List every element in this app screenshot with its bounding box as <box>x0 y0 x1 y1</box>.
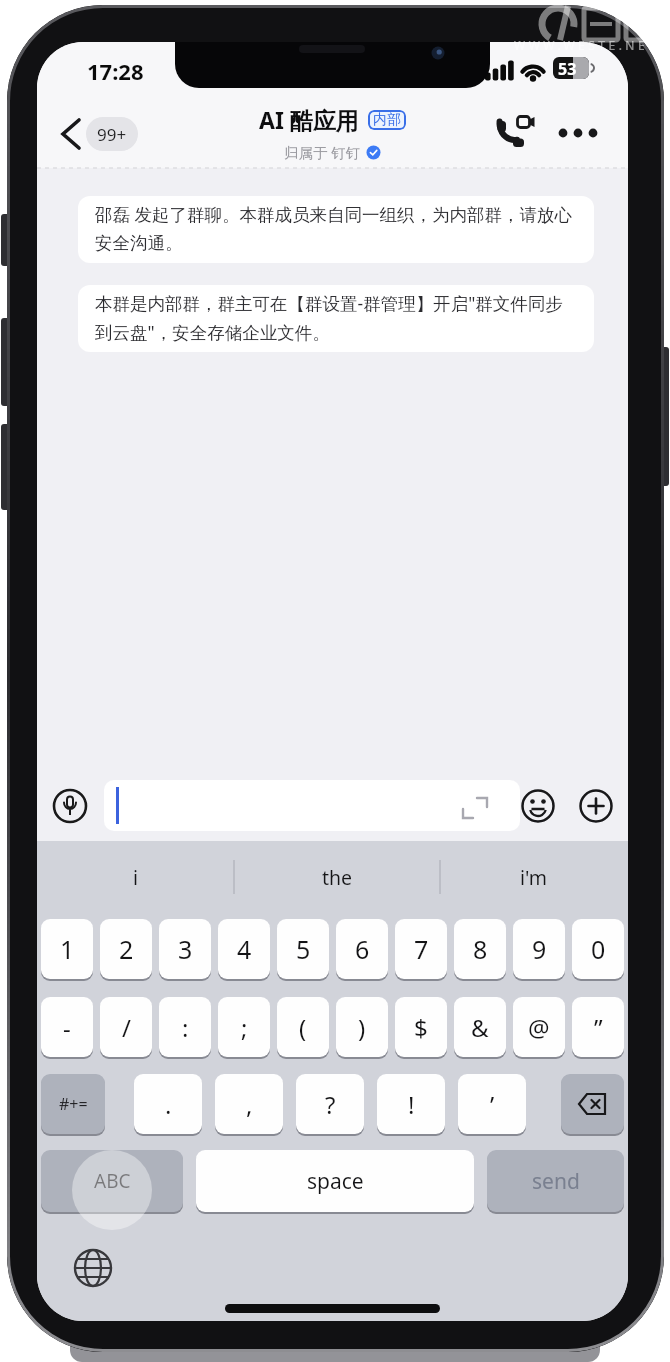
staticText: i'm <box>520 864 548 891</box>
button[interactable] <box>556 126 602 140</box>
button[interactable]: & <box>454 997 506 1057</box>
staticText: ( <box>299 1011 307 1044</box>
button[interactable]: / <box>100 997 152 1057</box>
staticText: 8 <box>473 932 488 966</box>
staticText: 内部 <box>373 111 401 129</box>
staticText: send <box>532 1167 580 1196</box>
button[interactable]: #+= <box>41 1074 105 1134</box>
button[interactable]: ” <box>572 997 624 1057</box>
button[interactable]: 8 <box>454 919 506 979</box>
button[interactable] <box>579 789 613 823</box>
staticText: 53 <box>558 58 577 79</box>
button[interactable] <box>521 789 555 823</box>
staticText: 9 <box>532 932 547 966</box>
button[interactable]: 4 <box>218 919 270 979</box>
staticText: 归属于 钉钉 <box>284 142 361 162</box>
button[interactable]: : <box>159 997 211 1057</box>
staticText: WWW.WESTE.NET <box>514 37 659 53</box>
staticText: space <box>307 1167 364 1196</box>
staticText: 0 <box>591 932 606 966</box>
staticText: - <box>63 1011 71 1044</box>
staticText: #+= <box>59 1093 88 1115</box>
staticText: ABC <box>94 1168 131 1194</box>
staticText: 本群是内部群，群主可在【群设置-群管理】开启"群文件同步 到云盘"，安全存储企业… <box>95 291 563 345</box>
staticText: / <box>122 1011 131 1044</box>
button[interactable]: ) <box>336 997 388 1057</box>
staticText: 3 <box>178 932 193 966</box>
staticText: the <box>322 864 353 891</box>
button[interactable]: 9 <box>513 919 565 979</box>
staticText: 2 <box>119 932 134 966</box>
button[interactable]: 3 <box>159 919 211 979</box>
button[interactable]: 7 <box>395 919 447 979</box>
button[interactable]: send <box>487 1150 624 1212</box>
button[interactable] <box>496 114 536 154</box>
staticText: ’ <box>490 1088 495 1121</box>
button[interactable]: 5 <box>277 919 329 979</box>
staticText: 7 <box>414 932 429 966</box>
staticText: 5 <box>296 932 311 966</box>
staticText: 邵磊 发起了群聊。本群成员来自同一组织，为内部群，请放心 安全沟通。 <box>95 202 573 254</box>
button[interactable]: $ <box>395 997 447 1057</box>
button[interactable]: ABC <box>41 1150 183 1212</box>
button[interactable]: 2 <box>100 919 152 979</box>
staticText: AI 酷应用 <box>259 104 359 135</box>
staticText: 4 <box>237 932 252 966</box>
staticText: 6 <box>355 932 370 966</box>
staticText: ” <box>594 1011 603 1044</box>
button[interactable] <box>72 1247 114 1289</box>
staticText: i <box>133 864 139 891</box>
staticText: ? <box>325 1088 336 1121</box>
staticText: & <box>471 1011 489 1044</box>
staticText: , <box>246 1088 253 1121</box>
staticText: ; <box>241 1011 248 1044</box>
button[interactable] <box>104 780 520 831</box>
staticText: ! <box>408 1088 415 1121</box>
button[interactable]: 1 <box>41 919 93 979</box>
button[interactable]: ? <box>296 1074 364 1134</box>
button[interactable]: , <box>215 1074 283 1134</box>
button[interactable] <box>561 1074 624 1134</box>
button[interactable]: 99+ <box>86 117 138 151</box>
staticText: $ <box>414 1011 428 1044</box>
staticText: . <box>165 1088 172 1121</box>
button[interactable]: the <box>234 858 440 896</box>
button[interactable]: i <box>37 858 234 896</box>
button[interactable]: - <box>41 997 93 1057</box>
button[interactable] <box>51 787 89 825</box>
staticText: @ <box>528 1011 550 1044</box>
button[interactable]: ’ <box>458 1074 526 1134</box>
button[interactable]: . <box>134 1074 202 1134</box>
button[interactable]: i'm <box>440 858 628 896</box>
button[interactable]: 0 <box>572 919 624 979</box>
staticText: ) <box>358 1011 366 1044</box>
staticText: 99+ <box>97 123 127 146</box>
button[interactable]: space <box>196 1150 474 1212</box>
staticText: 1 <box>60 932 75 966</box>
button[interactable]: 6 <box>336 919 388 979</box>
button[interactable]: ; <box>218 997 270 1057</box>
button[interactable]: @ <box>513 997 565 1057</box>
staticText: : <box>182 1011 189 1044</box>
staticText: 17:28 <box>87 56 144 86</box>
button[interactable]: ( <box>277 997 329 1057</box>
button[interactable]: ! <box>377 1074 445 1134</box>
